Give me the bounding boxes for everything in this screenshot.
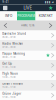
- button[interactable]: PROGRAMM: [17, 11, 35, 20]
- staticText: Happy Morning: [2, 52, 25, 55]
- staticText: Get Up: [2, 62, 12, 65]
- button[interactable]: Bayrische Stund: [0, 30, 56, 40]
- staticText: INFO: [5, 14, 12, 18]
- staticText: 13:00 – 15:00: [2, 76, 15, 79]
- staticText: Bayrische Stund: [2, 32, 26, 35]
- button[interactable]: Unser Fernseh: [0, 80, 56, 90]
- staticText: Unser Fernseh: [2, 82, 23, 85]
- button[interactable]: Previous day: [0, 20, 11, 30]
- button[interactable]: Happy Morning: [0, 50, 56, 60]
- staticText: 17:00 – 19:00: [2, 96, 15, 99]
- staticText: PROGRAMM: [17, 14, 35, 18]
- staticText: 9:41: [2, 0, 8, 4]
- staticText: High Noon: [2, 72, 18, 75]
- button[interactable]: Favourites: [48, 6, 53, 10]
- staticText: 11:00 – 13:00: [2, 66, 15, 69]
- button[interactable]: Get Up: [0, 60, 56, 70]
- button[interactable]: KONTAKT: [35, 11, 56, 20]
- staticText: 09:00 – 11:00: [2, 56, 15, 59]
- button[interactable]: INFO: [0, 11, 17, 20]
- staticText: LIVE: [23, 5, 32, 11]
- staticText: ▮▮▮ ▰: [45, 0, 54, 4]
- staticText: 15:00 – 17:00: [2, 86, 15, 89]
- staticText: Heute, 12.05.: [21, 24, 35, 27]
- button[interactable]: Radio Wecker: [0, 40, 56, 50]
- staticText: Radio Wecker: [2, 42, 23, 45]
- staticText: Grüne Jäger: [2, 92, 21, 95]
- button[interactable]: High Noon: [0, 70, 56, 80]
- button[interactable]: Grüne Jäger: [0, 90, 56, 100]
- staticText: KONTAKT: [39, 14, 53, 18]
- staticText: 05:00 – 07:00: [2, 36, 15, 39]
- staticText: 07:00 – 09:00: [2, 46, 15, 49]
- button[interactable]: Next day: [45, 20, 56, 30]
